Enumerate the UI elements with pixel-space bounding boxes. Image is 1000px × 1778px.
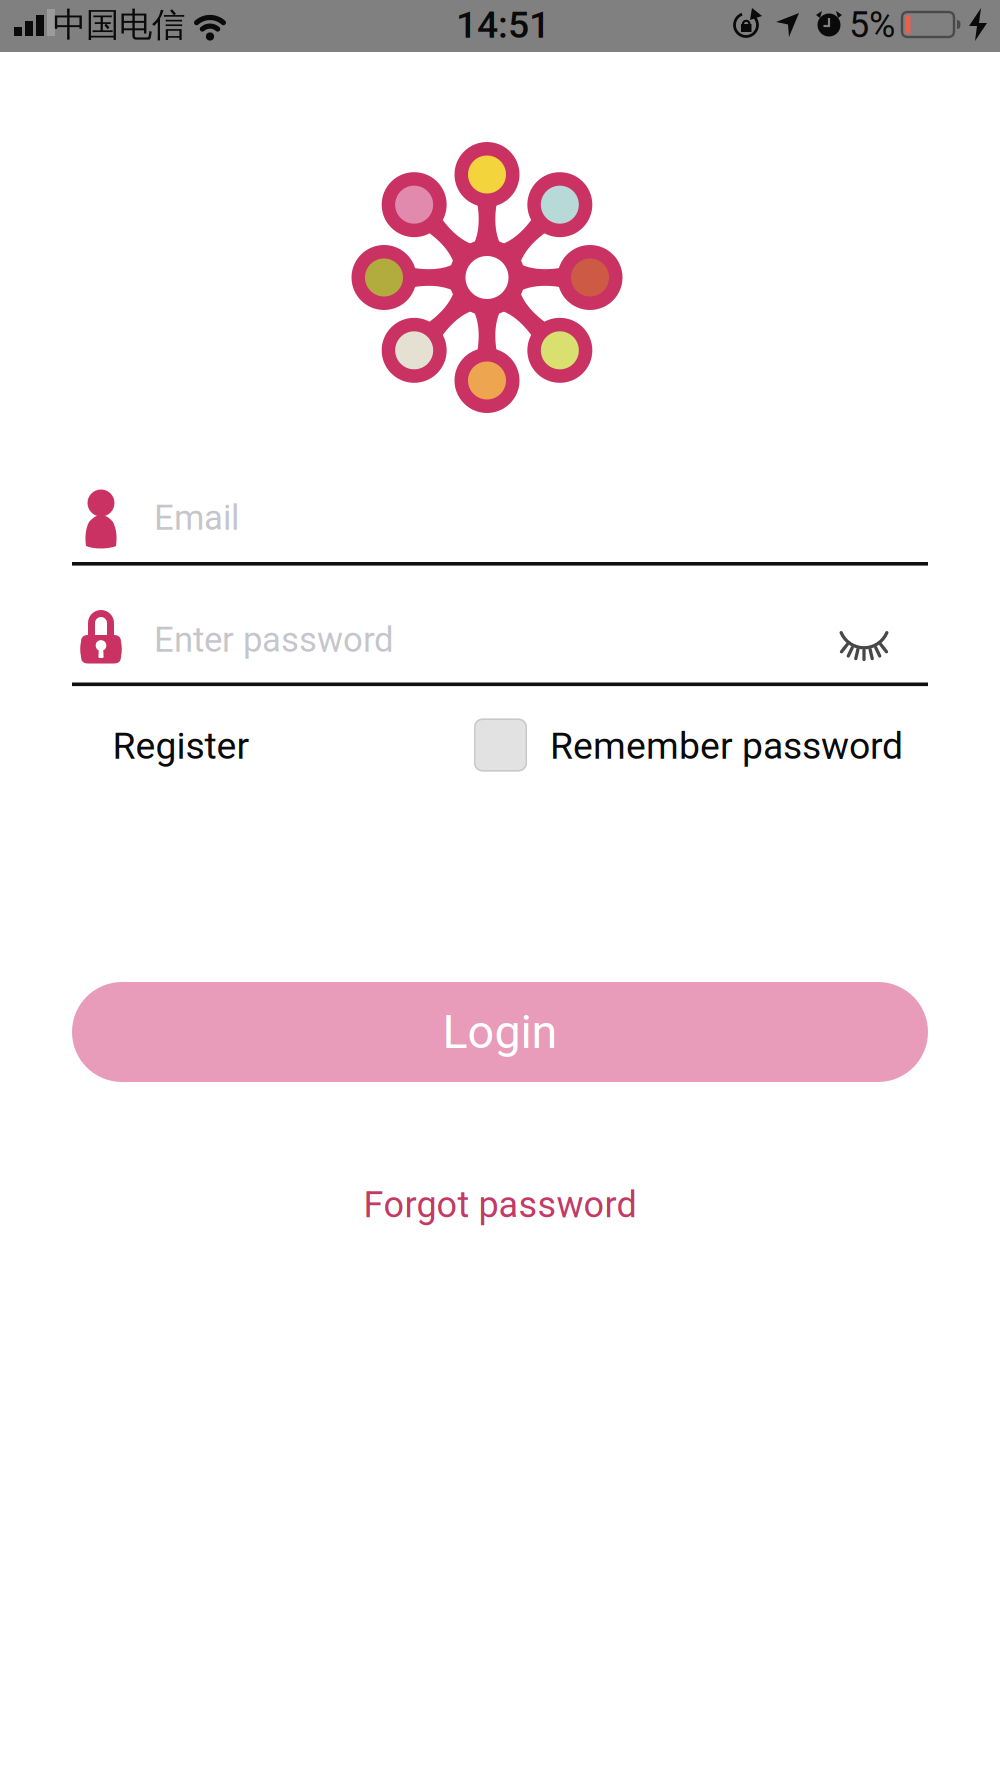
button[interactable]: Register xyxy=(112,724,249,768)
staticText: 5% xyxy=(849,4,895,46)
staticText: 14:51 xyxy=(456,3,550,47)
staticText: Enter password xyxy=(154,620,394,660)
button[interactable]: Login xyxy=(72,982,928,1082)
staticText: 中国电信 xyxy=(53,4,185,46)
staticText: Forgot password xyxy=(363,1184,636,1226)
button[interactable]: Show password xyxy=(832,604,896,668)
button[interactable]: Remember password xyxy=(474,718,527,771)
staticText: Email xyxy=(154,498,239,538)
staticText: Register xyxy=(112,724,249,768)
button[interactable]: Forgot password xyxy=(363,1184,636,1226)
staticText: Login xyxy=(442,1005,557,1059)
staticText: Remember password xyxy=(550,724,903,768)
